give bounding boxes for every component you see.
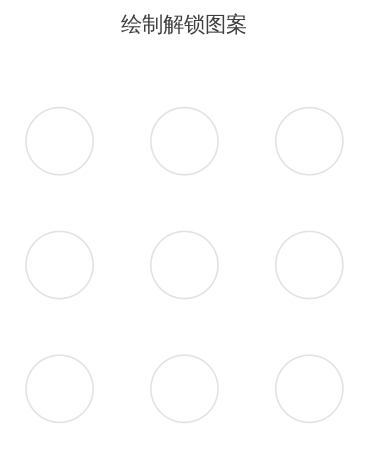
button[interactable]: Pattern dot 6 bbox=[276, 231, 343, 299]
staticText: 绘制解锁图案 bbox=[121, 11, 247, 38]
button[interactable]: Pattern dot 8 bbox=[151, 355, 218, 422]
button[interactable]: Pattern dot 4 bbox=[26, 231, 93, 299]
button[interactable]: Pattern dot 1 bbox=[26, 108, 93, 175]
button[interactable]: Pattern dot 9 bbox=[276, 355, 343, 422]
button[interactable]: Pattern dot 3 bbox=[276, 108, 343, 175]
button[interactable]: Pattern dot 2 bbox=[151, 108, 218, 175]
button[interactable]: Pattern dot 5 bbox=[151, 231, 218, 299]
button[interactable]: Pattern dot 7 bbox=[26, 355, 93, 422]
